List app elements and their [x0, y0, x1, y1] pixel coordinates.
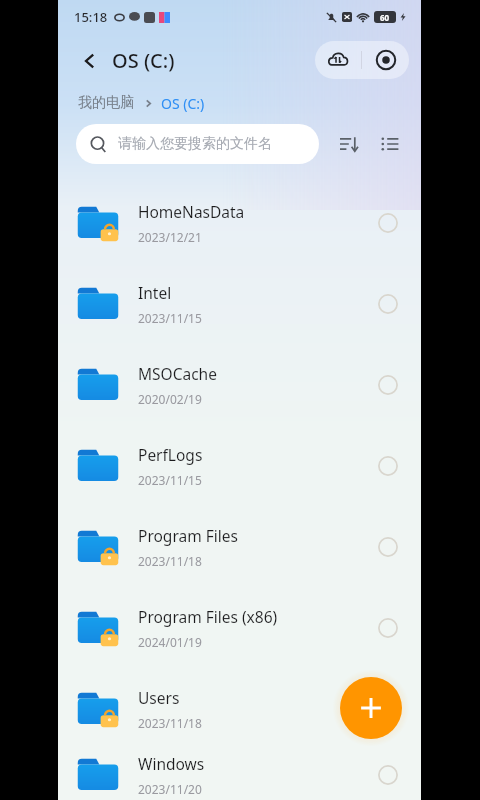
button[interactable]: Record	[362, 41, 409, 79]
button[interactable]: Select Program Files (x86)	[371, 611, 405, 645]
other: Back	[80, 51, 100, 71]
button[interactable]: Sort	[331, 127, 365, 161]
button[interactable]: Intel	[58, 263, 421, 344]
button[interactable]: Select Program Files	[371, 530, 405, 564]
staticText: 2020/02/19	[138, 391, 202, 407]
staticText: Windows	[138, 753, 205, 774]
staticText: 2024/01/19	[138, 634, 202, 650]
button[interactable]: HomeNasData	[58, 182, 421, 263]
staticText: Intel	[138, 282, 172, 303]
staticText: 15:18	[74, 8, 108, 26]
staticText: 请输入您要搜索的文件名	[118, 135, 272, 153]
button[interactable]: Windows	[58, 749, 421, 800]
staticText: 2023/12/21	[138, 229, 202, 245]
staticText: HomeNasData	[138, 201, 245, 222]
button[interactable]: Select MSOCache	[371, 368, 405, 402]
staticText: 2023/11/18	[138, 715, 202, 731]
staticText: 2023/11/20	[138, 781, 202, 797]
button[interactable]: Users	[58, 668, 421, 749]
button[interactable]: Select HomeNasData	[371, 206, 405, 240]
button[interactable]: MSOCache	[58, 344, 421, 425]
staticText: Users	[138, 687, 180, 708]
staticText: Program Files (x86)	[138, 606, 278, 627]
button[interactable]: Select Windows	[371, 758, 405, 792]
button[interactable]: OS (C:)	[159, 92, 207, 115]
staticText: 2023/11/15	[138, 472, 202, 488]
button[interactable]: Select Users	[371, 692, 405, 726]
button[interactable]: 我的电脑	[76, 92, 136, 114]
button[interactable]: 请输入您要搜索的文件名	[76, 124, 319, 164]
button[interactable]: View mode	[373, 127, 407, 161]
button[interactable]: Select PerfLogs	[371, 449, 405, 483]
staticText: 60	[380, 12, 390, 23]
staticText: 2023/11/18	[138, 553, 202, 569]
button[interactable]: Add	[340, 677, 402, 739]
staticText: OS (C:)	[112, 47, 175, 74]
staticText: Program Files	[138, 525, 238, 546]
button[interactable]: Select Intel	[371, 287, 405, 321]
staticText: OS (C:)	[161, 94, 205, 113]
staticText: PerfLogs	[138, 444, 203, 465]
button[interactable]: Program Files (x86)	[58, 587, 421, 668]
button[interactable]: PerfLogs	[58, 425, 421, 506]
button[interactable]: Transfer	[315, 41, 361, 79]
staticText: 2023/11/15	[138, 310, 202, 326]
button[interactable]: Program Files	[58, 506, 421, 587]
button[interactable]: Back	[76, 43, 179, 78]
staticText: 我的电脑	[78, 94, 134, 112]
staticText: MSOCache	[138, 363, 217, 384]
